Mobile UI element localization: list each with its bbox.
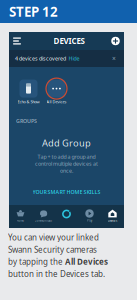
staticText: Home bbox=[16, 219, 24, 222]
staticText: Echo & Show bbox=[17, 99, 39, 104]
staticText: STEP 12 bbox=[9, 3, 58, 20]
button[interactable]: Play bbox=[78, 205, 101, 228]
button[interactable]: Menu bbox=[13, 34, 29, 48]
staticText: GROUPS bbox=[16, 117, 37, 125]
staticText: × bbox=[112, 54, 116, 63]
staticText: YOUR SMART HOME SKILLS bbox=[32, 188, 100, 195]
staticText: Play bbox=[87, 219, 92, 222]
staticText: 4 devices discovered bbox=[15, 55, 66, 62]
button[interactable]: Echo & Show bbox=[14, 80, 42, 104]
button[interactable]: YOUR SMART HOME SKILLS bbox=[32, 188, 100, 195]
staticText: DEVICES bbox=[53, 36, 84, 46]
staticText: Communicate bbox=[34, 219, 52, 222]
button[interactable]: Alexa bbox=[55, 205, 78, 228]
staticText: Hide bbox=[68, 55, 79, 62]
staticText: You can view your linked bbox=[8, 232, 99, 243]
staticText: All Devices bbox=[65, 256, 108, 267]
button[interactable]: Hide bbox=[68, 55, 79, 62]
staticText: Swann Security cameras bbox=[8, 244, 97, 255]
button[interactable]: Communicate bbox=[32, 205, 55, 228]
staticText: Devices bbox=[108, 219, 117, 222]
staticText: control multiple devices at bbox=[35, 160, 98, 167]
button[interactable]: All Devices bbox=[42, 80, 70, 104]
staticText: Tap + to add a group and bbox=[37, 153, 95, 160]
button[interactable]: Devices bbox=[101, 205, 124, 228]
staticText: once. bbox=[60, 167, 73, 174]
button[interactable]: Dismiss bbox=[110, 54, 118, 62]
button[interactable]: Add device bbox=[109, 34, 122, 48]
staticText: All Devices bbox=[46, 99, 66, 104]
staticText: by tapping the bbox=[8, 256, 65, 267]
staticText: button in the Devices tab. bbox=[8, 269, 105, 279]
button[interactable]: Home bbox=[9, 205, 32, 228]
staticText: Add Group bbox=[42, 137, 91, 149]
